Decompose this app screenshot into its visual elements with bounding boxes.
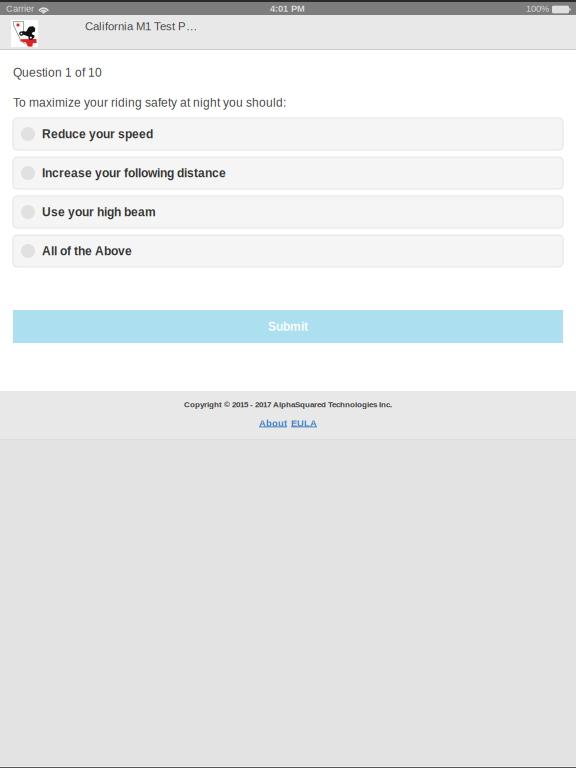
staticText: To maximize your riding safety at night … — [13, 96, 286, 109]
staticText: Copyright © 2015 - 2017 AlphaSquared Tec… — [184, 400, 392, 409]
staticText: Use your high beam — [42, 205, 156, 219]
staticText: Question 1 of 10 — [13, 66, 102, 79]
button[interactable]: Increase your following distance — [13, 157, 563, 189]
button[interactable]: Submit — [13, 310, 563, 343]
button[interactable]: EULA — [291, 418, 317, 428]
staticText: Carrier — [6, 3, 34, 14]
staticText: 4:01 PM — [270, 3, 305, 14]
staticText: About — [259, 418, 287, 428]
button[interactable]: Use your high beam — [13, 196, 563, 228]
staticText: EULA — [291, 418, 317, 428]
staticText: Submit — [268, 320, 308, 333]
staticText: All of the Above — [42, 244, 132, 258]
button[interactable]: Reduce your speed — [13, 118, 563, 150]
staticText: Reduce your speed — [42, 127, 153, 141]
button[interactable]: About — [259, 418, 287, 428]
staticText: 100% — [526, 3, 549, 14]
button[interactable]: California M1 Test Prep home — [11, 20, 38, 47]
staticText: Increase your following distance — [42, 166, 226, 180]
staticText: California M1 Test P… — [85, 20, 197, 33]
button[interactable]: All of the Above — [13, 235, 563, 267]
